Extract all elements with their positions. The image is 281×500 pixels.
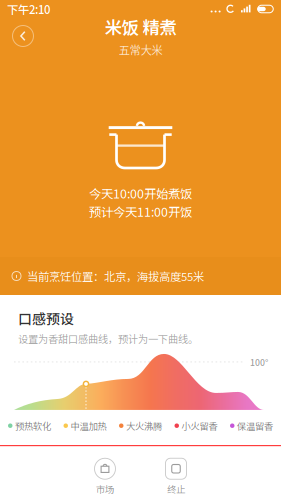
staticText: 下午2:10 bbox=[7, 1, 50, 17]
staticText: 五常大米 bbox=[118, 41, 162, 58]
staticText: 今天10:00开始煮饭 bbox=[89, 184, 192, 202]
staticText: 设置为香甜口感曲线，预计为一下曲线。 bbox=[18, 331, 198, 346]
button[interactable]: 终止 bbox=[151, 458, 201, 496]
staticText: 预热软化 bbox=[15, 419, 51, 432]
staticText: 口感预设 bbox=[18, 308, 74, 328]
button[interactable]: Back bbox=[6, 19, 40, 53]
staticText: 小火留香 bbox=[181, 419, 217, 432]
staticText: 中温加热 bbox=[70, 419, 106, 432]
staticText: 终止 bbox=[167, 482, 185, 496]
staticText: 保温留香 bbox=[237, 419, 273, 432]
staticText: 当前烹饪位置：北京，海拔高度55米 bbox=[27, 268, 204, 284]
staticText: 米饭 精煮 bbox=[104, 14, 176, 39]
staticText: 市场 bbox=[96, 482, 114, 496]
staticText: 大火沸腾 bbox=[126, 419, 162, 432]
button[interactable]: 市场 bbox=[80, 458, 130, 496]
staticText: 100° bbox=[250, 356, 268, 368]
staticText: 预计今天11:00开饭 bbox=[89, 202, 192, 220]
